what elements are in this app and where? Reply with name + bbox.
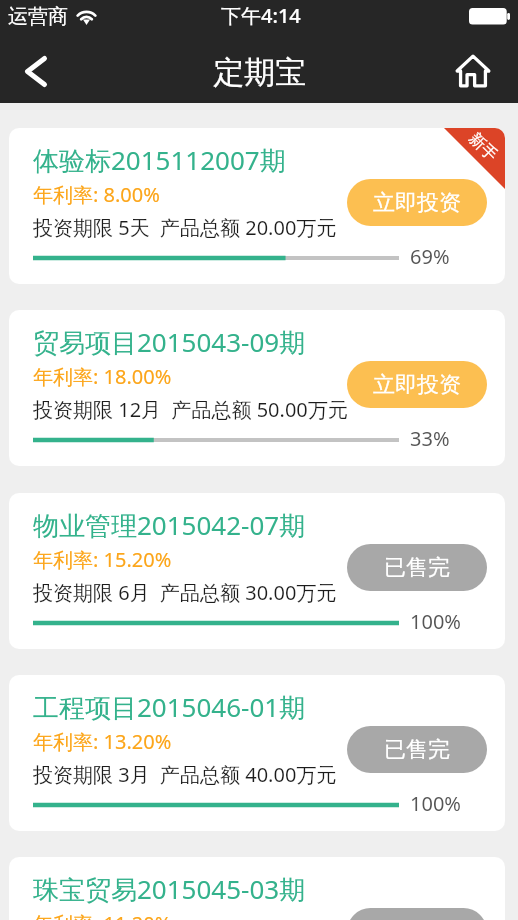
staticText: 体验标2015112007期 <box>33 142 286 178</box>
staticText: 运营商 <box>8 4 68 29</box>
button[interactable]: 工程项目2015046-01期 <box>9 675 505 831</box>
button[interactable]: 物业管理2015042-07期 <box>9 493 505 649</box>
staticText: 工程项目2015046-01期 <box>33 689 306 725</box>
staticText: 年利率: 13.20% <box>33 728 172 755</box>
button[interactable]: 立即投资 <box>347 361 487 408</box>
button[interactable]: 已售完 <box>347 908 487 920</box>
staticText: 下午4:14 <box>221 2 301 29</box>
button[interactable]: Home <box>442 40 504 102</box>
staticText: 定期宝 <box>213 53 306 92</box>
button[interactable]: 立即投资 <box>347 179 487 226</box>
staticText: 投资期限 6月 产品总额 30.00万元 <box>33 579 337 606</box>
staticText: 年利率: 8.00% <box>33 181 160 208</box>
button[interactable]: 已售完 <box>347 726 487 773</box>
staticText: 100% <box>410 790 461 817</box>
staticText: 投资期限 3月 产品总额 40.00万元 <box>33 761 337 788</box>
button[interactable]: 新手 <box>9 128 505 284</box>
staticText: 100% <box>410 608 461 635</box>
button[interactable]: 贸易项目2015043-09期 <box>9 310 505 466</box>
button[interactable]: Back <box>8 43 64 99</box>
staticText: 新手 <box>465 129 501 165</box>
staticText: 立即投资 <box>373 189 461 217</box>
staticText: 已售完 <box>384 554 450 582</box>
button[interactable]: 已售完 <box>347 544 487 591</box>
staticText: 已售完 <box>384 736 450 764</box>
staticText: 69% <box>410 243 450 270</box>
staticText: 物业管理2015042-07期 <box>33 507 306 543</box>
staticText: 立即投资 <box>373 371 461 399</box>
staticText: 珠宝贸易2015045-03期 <box>33 871 306 907</box>
staticText: 贸易项目2015043-09期 <box>33 324 306 360</box>
staticText: 33% <box>410 425 450 452</box>
staticText: 投资期限 12月 产品总额 50.00万元 <box>33 396 348 423</box>
staticText: 年利率: 11.20% <box>33 910 172 920</box>
staticText: 投资期限 5天 产品总额 20.00万元 <box>33 214 337 241</box>
staticText: 年利率: 15.20% <box>33 546 172 573</box>
button[interactable]: 珠宝贸易2015045-03期 <box>9 857 505 920</box>
staticText: 年利率: 18.00% <box>33 363 172 390</box>
